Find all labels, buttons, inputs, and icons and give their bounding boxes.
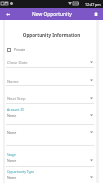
staticText: New Opportunity (32, 11, 72, 18)
staticText: Opportunity Type (7, 169, 35, 173)
button[interactable]: Account ID (0, 104, 103, 125)
button[interactable]: None (0, 125, 103, 146)
button[interactable]: Name (0, 68, 103, 86)
staticText: 12:47 pm (85, 2, 101, 7)
button[interactable]: Opportunity Type (0, 166, 103, 183)
button[interactable]: Private (0, 44, 103, 55)
button[interactable]: Close Date (0, 55, 103, 68)
button[interactable]: Back (2, 8, 14, 20)
staticText: None (7, 130, 17, 135)
button[interactable]: Home (90, 8, 102, 20)
button[interactable]: Stage (0, 146, 103, 167)
staticText: Private (14, 47, 26, 52)
staticText: None (7, 113, 17, 118)
staticText: Opportunity Information (0, 32, 103, 38)
staticText: Stage (7, 152, 16, 156)
staticText: Name (7, 79, 19, 85)
staticText: Close Date (7, 60, 28, 66)
staticText: Account ID (7, 107, 24, 111)
staticText: None (7, 175, 17, 180)
staticText: Next Step (7, 96, 26, 102)
button[interactable]: Next Step (0, 85, 103, 104)
staticText: None (7, 158, 17, 163)
